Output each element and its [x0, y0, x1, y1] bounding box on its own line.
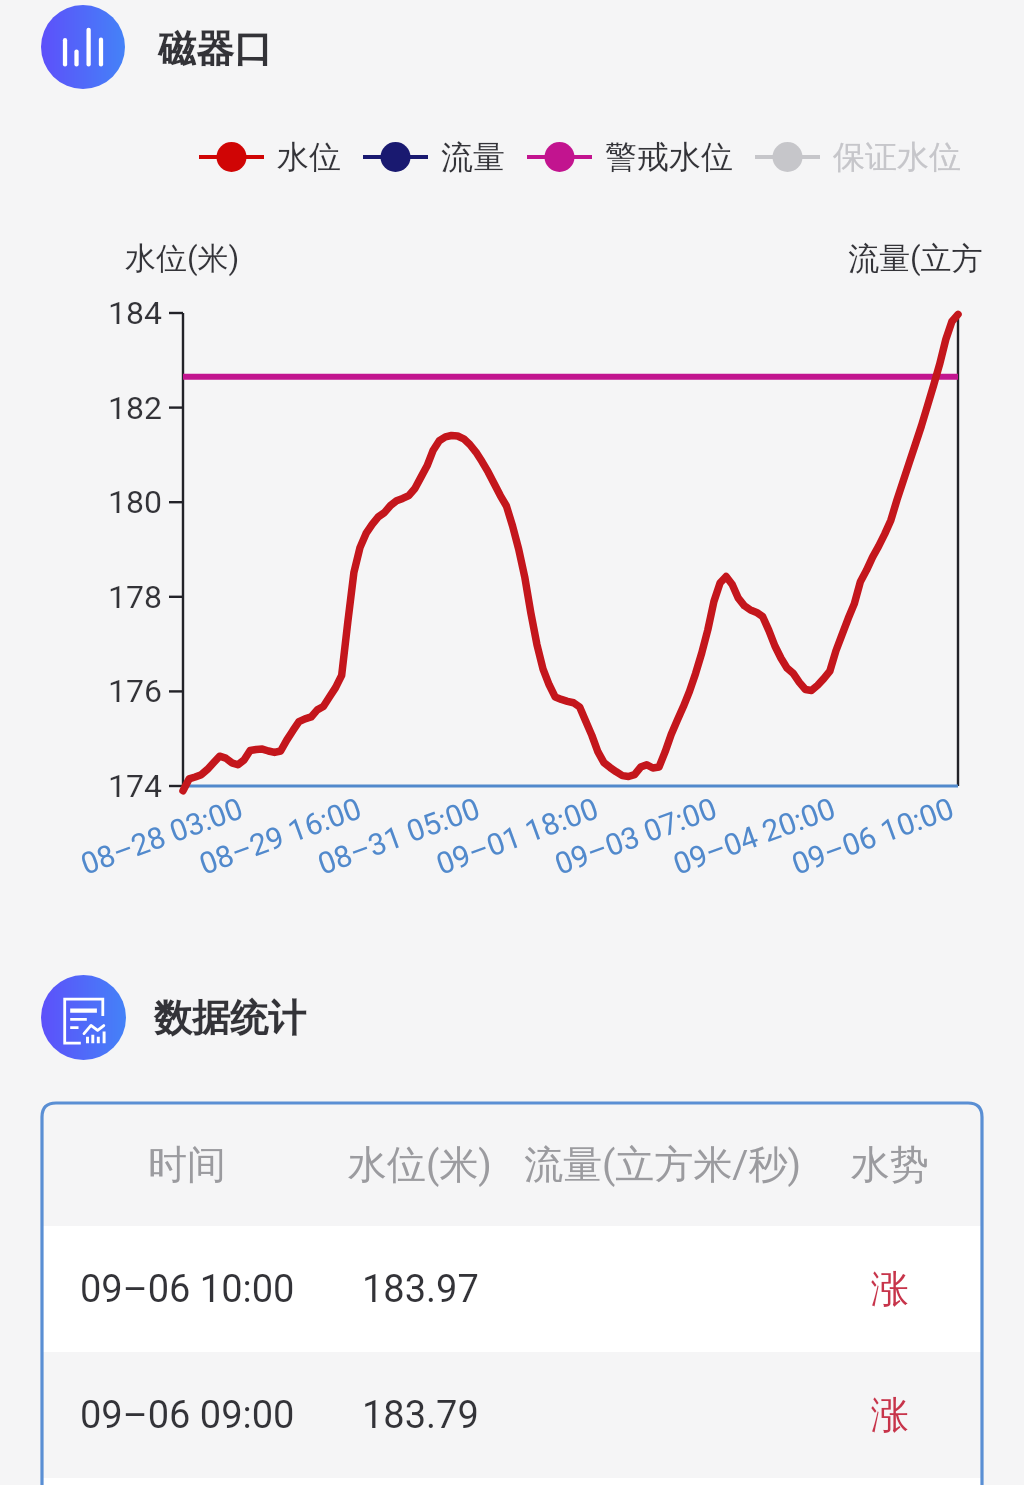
button[interactable]: Statistics: [41, 975, 126, 1060]
staticText: 09–06 10:00: [80, 1267, 295, 1312]
button[interactable]: 流量: [362, 136, 504, 178]
staticText: 水位(米): [348, 1140, 492, 1189]
button[interactable]: Station: [41, 5, 125, 89]
staticText: 183.79: [362, 1393, 479, 1438]
button[interactable]: 09–06 10:00: [42, 1226, 982, 1352]
staticText: 时间: [148, 1140, 226, 1189]
staticText: 流量(立方米/秒): [524, 1140, 802, 1189]
button[interactable]: 09–06 09:00: [42, 1352, 982, 1478]
staticText: 09–06 09:00: [80, 1393, 295, 1438]
staticText: 数据统计: [154, 994, 306, 1042]
button[interactable]: 水位: [199, 136, 340, 178]
staticText: 183.97: [362, 1267, 479, 1312]
button[interactable]: 警戒水位: [526, 136, 732, 178]
staticText: 涨: [871, 1265, 909, 1313]
staticText: 水势: [851, 1140, 929, 1189]
staticText: 涨: [871, 1391, 909, 1439]
button[interactable]: 保证水位: [754, 136, 960, 178]
staticText: 磁器口: [158, 25, 272, 73]
